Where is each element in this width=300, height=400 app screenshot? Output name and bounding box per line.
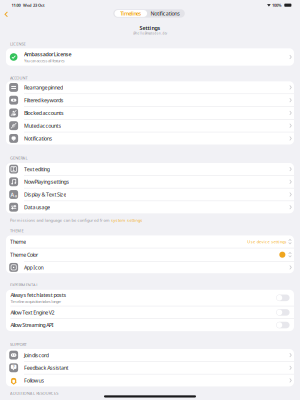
staticText: Theme Color	[10, 251, 38, 258]
staticText: Display & Text Size	[24, 191, 66, 198]
staticText: Timelines	[120, 10, 141, 17]
staticText: Notifications	[150, 10, 180, 17]
staticText: LICENSE	[10, 41, 26, 47]
staticText: 11:00	[11, 2, 20, 8]
staticText: EXPERIMENTAL	[10, 282, 38, 287]
staticText: A	[10, 191, 14, 198]
staticText: Text editing	[24, 166, 50, 173]
button[interactable]: Back	[0, 7, 12, 21]
staticText: Allow Text Engine V2	[10, 309, 55, 316]
staticText: Blocked accounts	[24, 109, 64, 116]
button[interactable]: Allow Streaming API	[6, 319, 294, 331]
button[interactable]: App Icon	[6, 262, 294, 273]
staticText: Filtered keywords	[24, 97, 64, 104]
staticText: a	[15, 193, 17, 198]
button[interactable]: NowPlaying settings	[6, 176, 294, 188]
button[interactable]: Muted accounts	[6, 119, 294, 132]
staticText: Feedback Assistant	[24, 364, 69, 371]
button[interactable]: Blocked accounts	[6, 107, 294, 119]
button[interactable]: Rearrange pinned	[6, 81, 294, 93]
staticText: Theme	[10, 238, 26, 245]
button[interactable]: Notifications	[6, 132, 294, 144]
button[interactable]: Notifications	[147, 10, 184, 17]
staticText: You can access all features	[24, 58, 65, 63]
button[interactable]: Text editing	[6, 163, 294, 175]
staticText: THEME	[10, 228, 23, 233]
staticText: @hello@mastodon.dev	[133, 32, 167, 35]
button[interactable]: Join discord	[6, 349, 294, 361]
staticText: Muted accounts	[24, 122, 61, 129]
button[interactable]: Timelines	[114, 10, 147, 17]
staticText: ADDITIONAL RESOURCES	[10, 390, 58, 396]
staticText: system settings	[111, 218, 142, 223]
staticText: Timeline acquisition takes longer	[10, 299, 62, 304]
button[interactable]: Data usage	[6, 201, 294, 213]
button[interactable]: Always fetch latest posts	[6, 290, 294, 306]
staticText: Always fetch latest posts	[10, 291, 67, 299]
staticText: Data usage	[24, 204, 50, 211]
staticText: Ambassador License	[24, 51, 72, 58]
staticText: App Icon	[24, 264, 44, 271]
staticText: ACCOUNT	[10, 75, 28, 80]
staticText: NowPlaying settings	[24, 178, 69, 185]
staticText: Wed 23 Oct	[23, 2, 45, 8]
staticText: Follow us	[24, 377, 44, 384]
staticText: ?	[13, 364, 15, 369]
button[interactable]: Ambassador License	[6, 48, 294, 66]
button[interactable]: A	[6, 188, 294, 201]
staticText: Settings	[139, 24, 160, 31]
button[interactable]: Follow us	[6, 374, 294, 386]
staticText: 100%	[272, 2, 282, 8]
staticText: Notifications	[24, 135, 53, 142]
button[interactable]: Allow Text Engine V2	[6, 306, 294, 318]
staticText: GENERAL	[10, 155, 28, 161]
button[interactable]: Theme Color	[6, 248, 294, 261]
button[interactable]: ?	[6, 362, 294, 374]
staticText: Allow Streaming API	[10, 321, 54, 329]
staticText: Permissions and language can be configur…	[10, 218, 111, 223]
staticText: Use device settings	[247, 239, 287, 244]
staticText: SUPPORT	[10, 342, 27, 347]
staticText: Rearrange pinned	[24, 84, 63, 91]
button[interactable]: Filtered keywords	[6, 94, 294, 106]
button[interactable]: Theme	[6, 235, 294, 248]
staticText: Join discord	[24, 352, 49, 359]
